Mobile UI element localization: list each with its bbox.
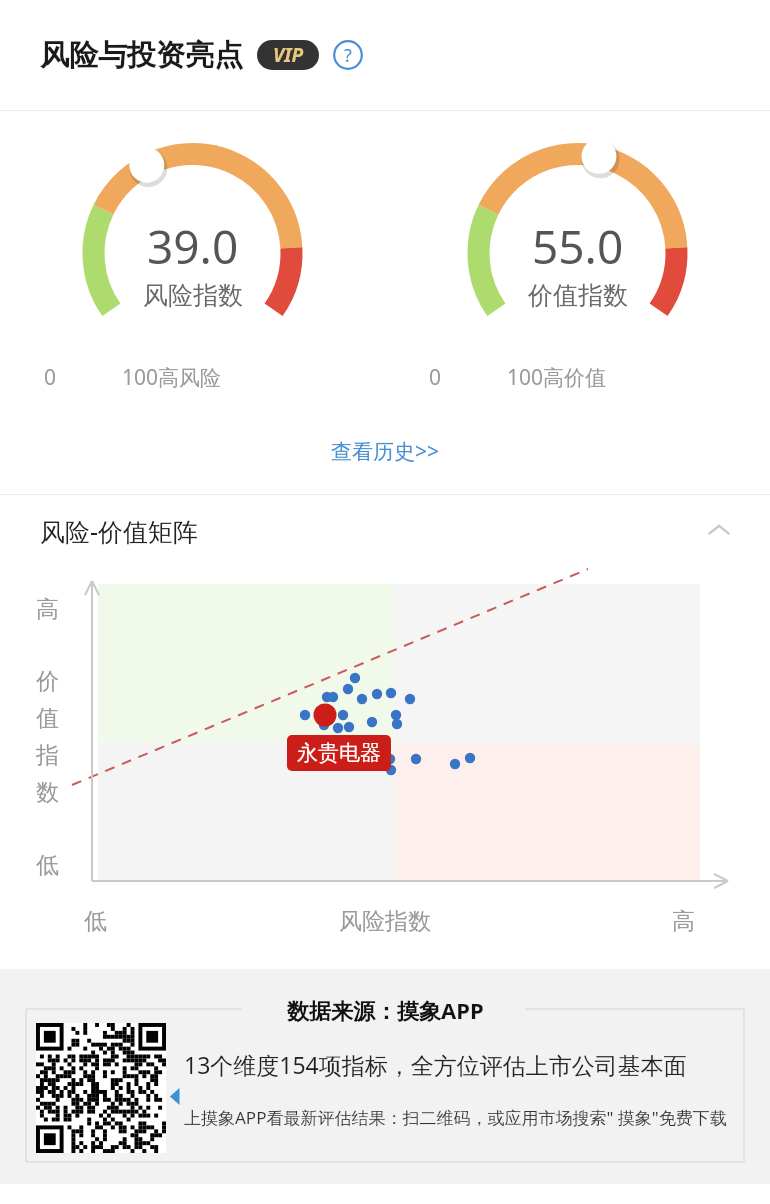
staticText: 查看历史>> xyxy=(331,437,440,466)
staticText: 低 xyxy=(84,907,107,936)
staticText: 高 xyxy=(672,907,695,936)
staticText: 价 xyxy=(36,667,59,696)
staticText: 风险指数 xyxy=(143,280,243,311)
staticText: ? xyxy=(344,43,352,68)
staticText: 13个维度154项指标，全方位评估上市公司基本面 xyxy=(184,1049,687,1080)
staticText: 数 xyxy=(36,778,59,807)
staticText: 低 xyxy=(36,851,59,880)
staticText: 价值指数 xyxy=(528,280,628,311)
staticText: 0 xyxy=(429,363,442,392)
staticText: 39.0 xyxy=(147,215,239,278)
staticText: 55.0 xyxy=(532,215,624,278)
staticText: 风险-价值矩阵 xyxy=(40,514,199,548)
staticText: 50中性 xyxy=(163,141,223,167)
staticText: 数据来源：摸象APP xyxy=(287,995,484,1025)
staticText: 100高价值 xyxy=(507,363,607,392)
staticText: VIP xyxy=(273,42,304,68)
staticText: 0 xyxy=(44,363,57,392)
staticText: 上摸象APP看最新评估结果：扫二维码，或应用市场搜索" 摸象"免费下载 xyxy=(184,1106,727,1129)
staticText: 风险与投资亮点 xyxy=(40,37,243,74)
staticText: 永贵电器 xyxy=(297,740,381,766)
staticText: 50中性 xyxy=(548,141,608,167)
staticText: 值 xyxy=(36,704,59,733)
button[interactable]: VIP xyxy=(257,40,319,70)
button[interactable]: 风险-价值矩阵 xyxy=(0,495,770,567)
staticText: 高 xyxy=(36,595,59,624)
button[interactable]: 查看历史>> xyxy=(319,431,452,472)
staticText: 风险指数 xyxy=(339,907,431,936)
button[interactable]: 永贵电器 xyxy=(287,735,391,771)
staticText: 100高风险 xyxy=(122,363,222,392)
staticText: 指 xyxy=(36,741,59,770)
button[interactable]: 帮助 xyxy=(333,40,363,70)
